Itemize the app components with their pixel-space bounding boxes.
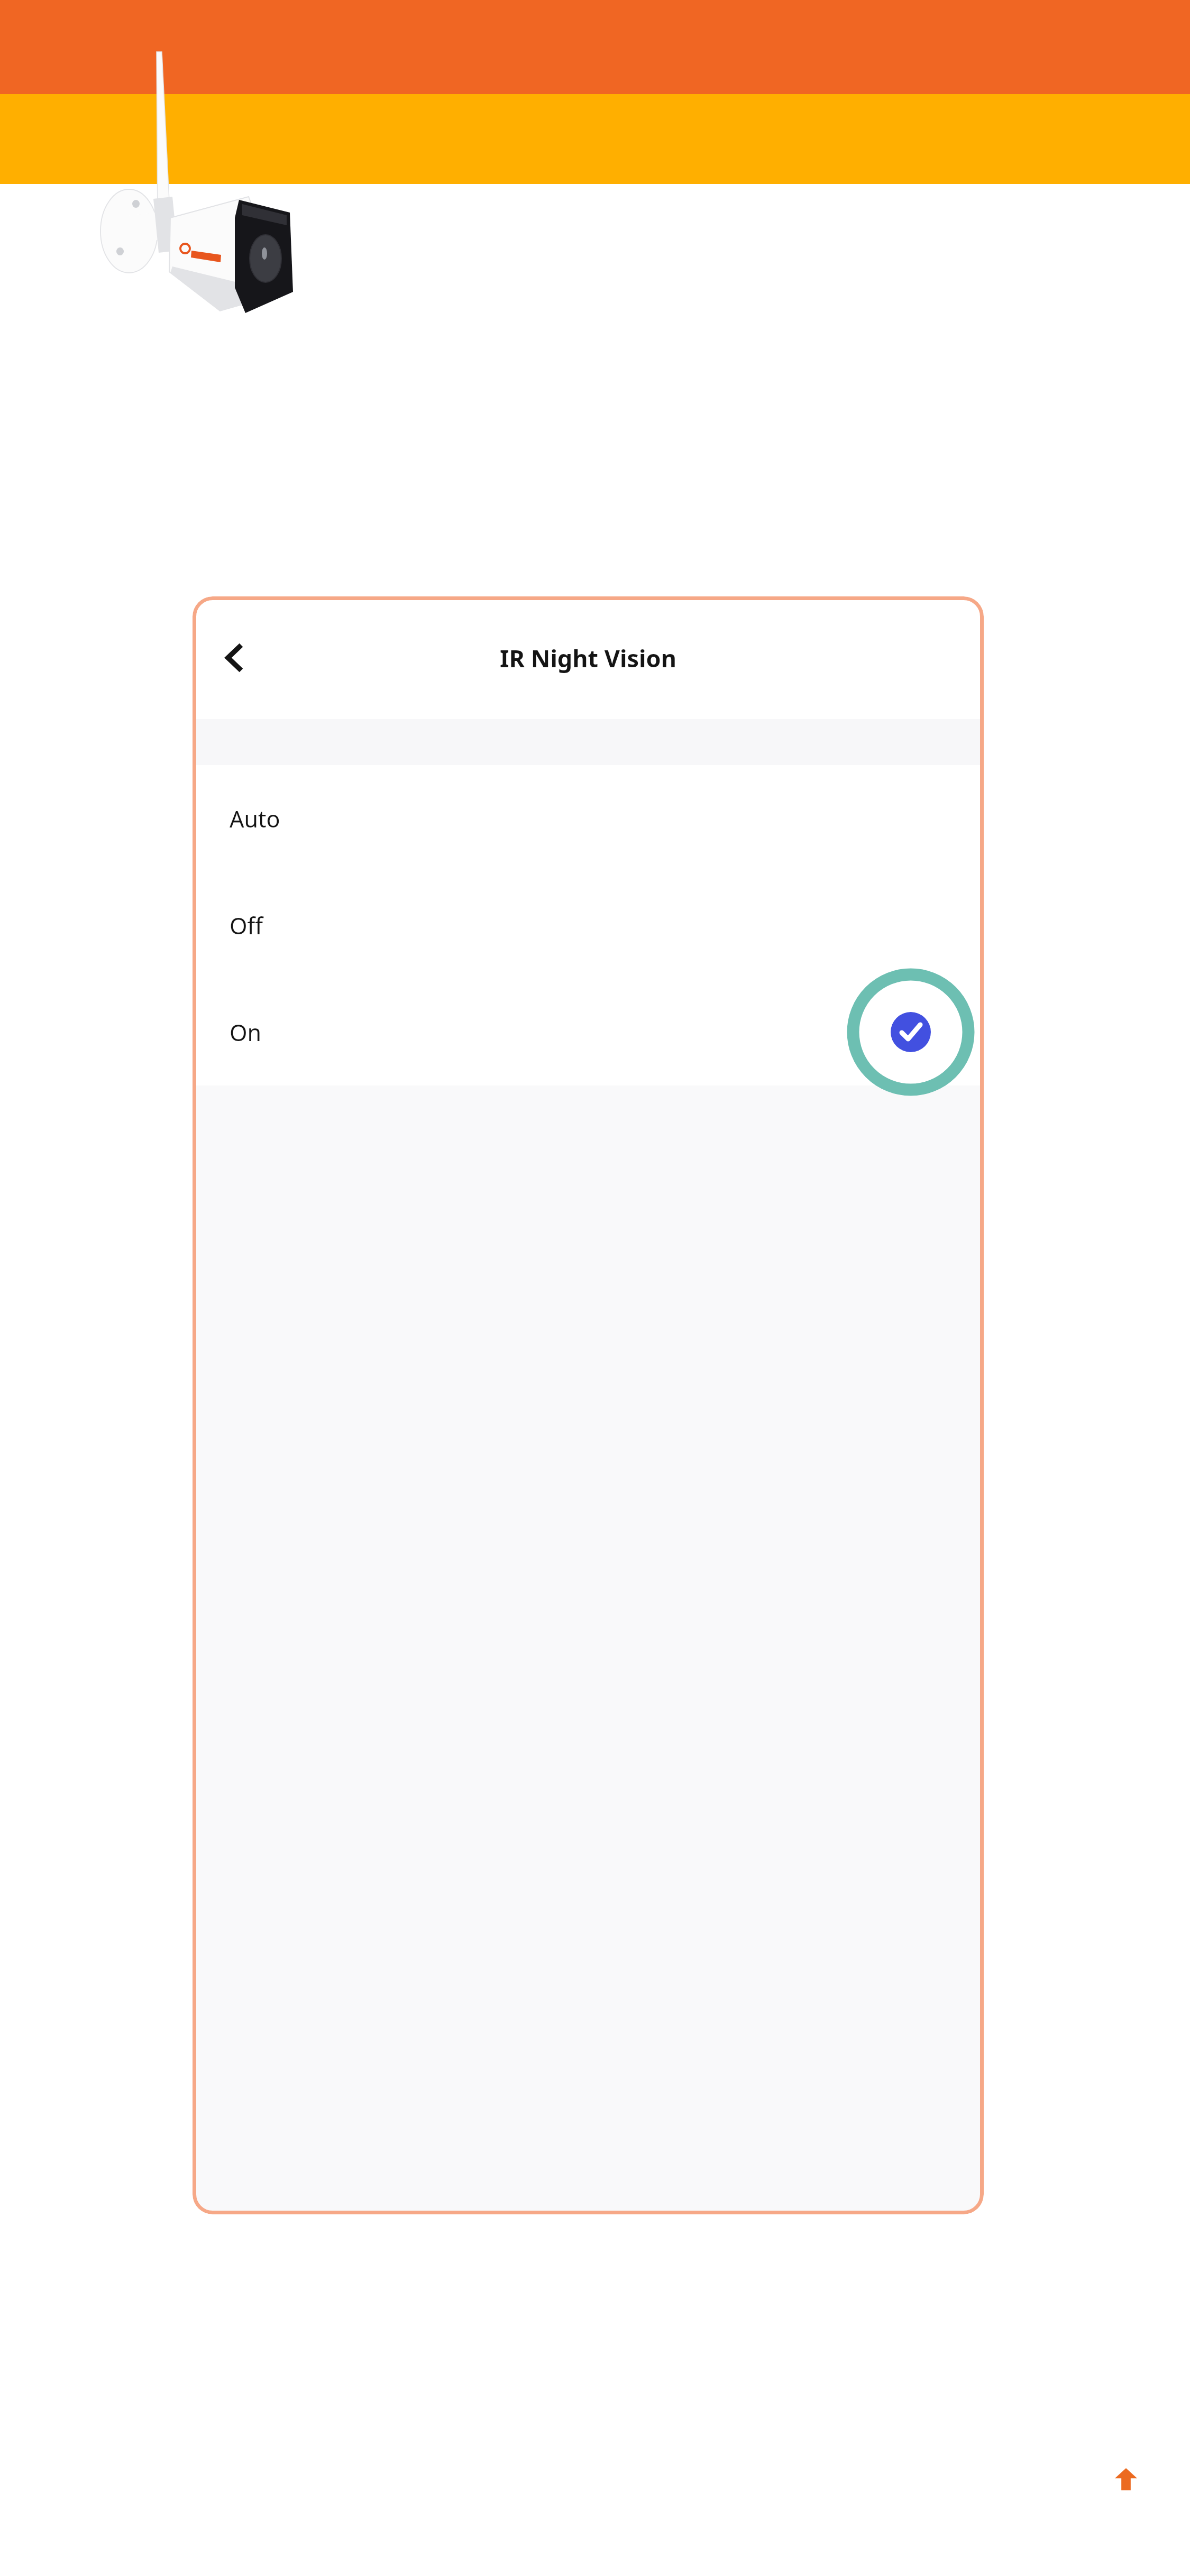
staticText: Off — [230, 910, 263, 941]
button[interactable]: Scroll to top — [1105, 2459, 1147, 2500]
other: Selected — [842, 979, 980, 1085]
button[interactable]: Back — [201, 625, 267, 691]
staticText: IR Night Vision — [500, 642, 676, 674]
button[interactable]: Off — [193, 872, 984, 979]
button[interactable]: On — [193, 979, 984, 1085]
staticText: Auto — [230, 803, 280, 834]
staticText: On — [230, 1017, 262, 1048]
button[interactable]: Auto — [193, 765, 984, 872]
